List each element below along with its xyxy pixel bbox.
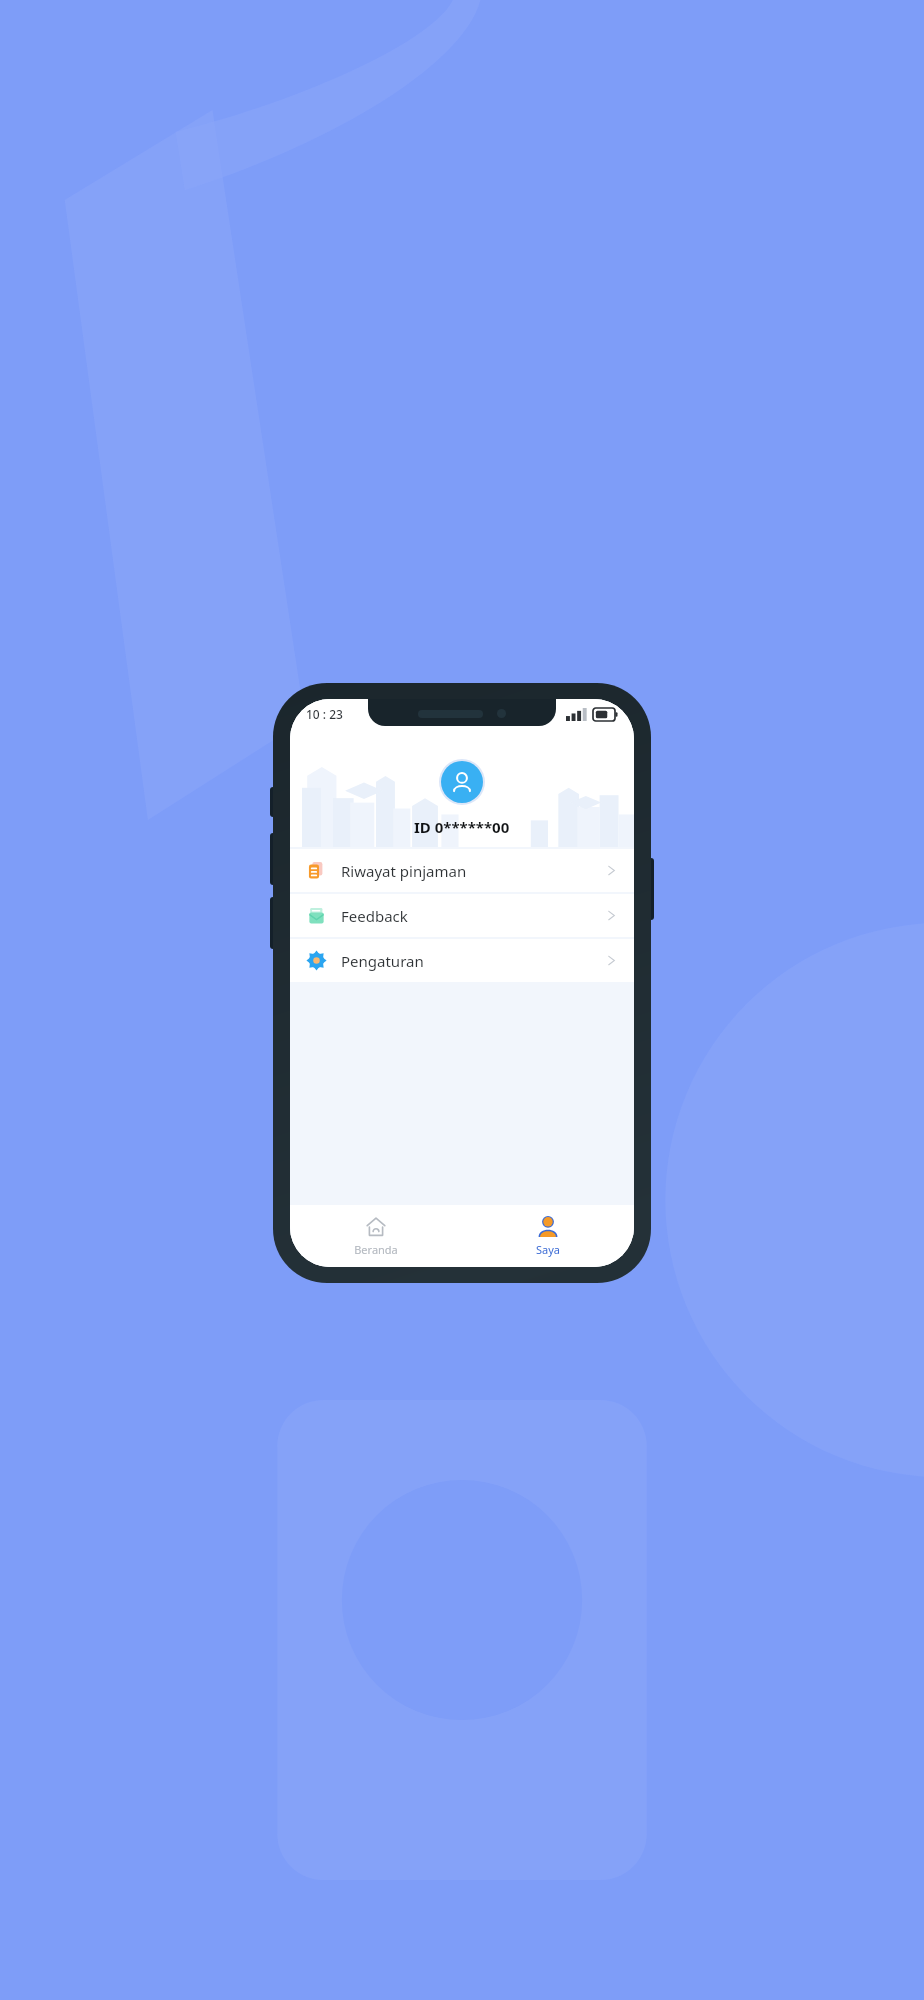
button[interactable]: Beranda — [290, 1205, 462, 1267]
button[interactable]: Feedback — [290, 894, 634, 937]
staticText: Feedback — [341, 906, 408, 926]
button[interactable]: Riwayat pinjaman — [290, 849, 634, 892]
button[interactable]: Saya — [462, 1205, 634, 1267]
staticText: Beranda — [354, 1242, 398, 1257]
staticText: Saya — [536, 1242, 560, 1257]
staticText: 10 : 23 — [306, 706, 343, 722]
staticText: Pengaturan — [341, 951, 424, 971]
staticText: ID 0******00 — [414, 817, 510, 837]
other: Profile photo — [441, 761, 483, 803]
staticText: Riwayat pinjaman — [341, 861, 467, 881]
button[interactable]: Pengaturan — [290, 939, 634, 982]
